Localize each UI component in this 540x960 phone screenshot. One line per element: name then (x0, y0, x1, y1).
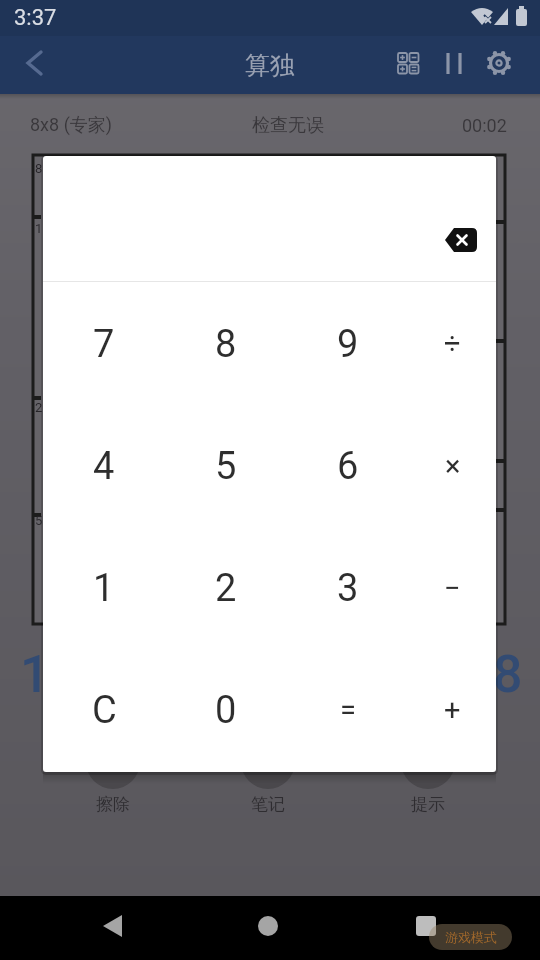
button[interactable]: 9 (287, 283, 409, 405)
staticText: 2 (215, 566, 237, 611)
button[interactable] (400, 896, 452, 960)
button[interactable]: 0 (165, 649, 287, 771)
staticText: 提示 (411, 794, 445, 815)
staticText: 笔记 (251, 794, 285, 815)
staticText: 8x8 (专家) (30, 114, 113, 137)
staticText: 2 (35, 400, 43, 415)
button[interactable] (433, 216, 489, 264)
staticText: 5 (35, 513, 43, 528)
button[interactable] (0, 36, 56, 94)
button[interactable]: 7 (43, 283, 165, 405)
staticText: = (340, 693, 356, 727)
staticText: − (444, 571, 461, 605)
button[interactable]: + (409, 649, 496, 771)
staticText: + (444, 693, 461, 727)
button[interactable] (242, 896, 294, 960)
staticText: 1 (20, 644, 50, 704)
staticText: 6 (337, 444, 359, 489)
staticText: C (92, 688, 117, 733)
staticText: 5 (215, 444, 237, 489)
staticText: 3:37 (14, 5, 57, 31)
staticText: 4 (93, 444, 115, 489)
button[interactable]: 6 (287, 405, 409, 527)
button[interactable]: 3 (287, 527, 409, 649)
staticText: 擦除 (96, 794, 130, 815)
staticText: 检查无误 (252, 114, 324, 137)
button[interactable]: 提示 (388, 792, 468, 816)
staticText: 8 (493, 644, 523, 704)
button[interactable]: − (409, 527, 496, 649)
button[interactable] (474, 36, 518, 94)
button[interactable]: ÷ (409, 283, 496, 405)
staticText: 8 (215, 322, 237, 367)
button[interactable]: 擦除 (73, 792, 153, 816)
button[interactable]: 5 (165, 405, 287, 527)
staticText: 3 (337, 566, 359, 611)
staticText: 游戏模式 (445, 929, 497, 945)
button[interactable]: 笔记 (228, 792, 308, 816)
staticText: 1 (35, 221, 43, 236)
button[interactable]: = (287, 649, 409, 771)
button[interactable] (386, 36, 430, 94)
staticText: × (445, 449, 461, 483)
staticText: ÷ (444, 327, 461, 361)
staticText: 7 (93, 322, 115, 367)
button[interactable]: 4 (43, 405, 165, 527)
button[interactable]: × (409, 405, 496, 527)
button[interactable]: C (43, 649, 165, 771)
staticText: 算独 (245, 50, 295, 81)
staticText: 9 (337, 322, 359, 367)
staticText: 8 (35, 161, 43, 176)
staticText: 00:02 (462, 115, 507, 136)
button[interactable] (436, 36, 472, 94)
button[interactable]: 2 (165, 527, 287, 649)
button[interactable] (86, 896, 138, 960)
button[interactable]: 8 (165, 283, 287, 405)
button[interactable]: 1 (43, 527, 165, 649)
staticText: 1 (93, 566, 115, 611)
staticText: 0 (215, 688, 237, 733)
